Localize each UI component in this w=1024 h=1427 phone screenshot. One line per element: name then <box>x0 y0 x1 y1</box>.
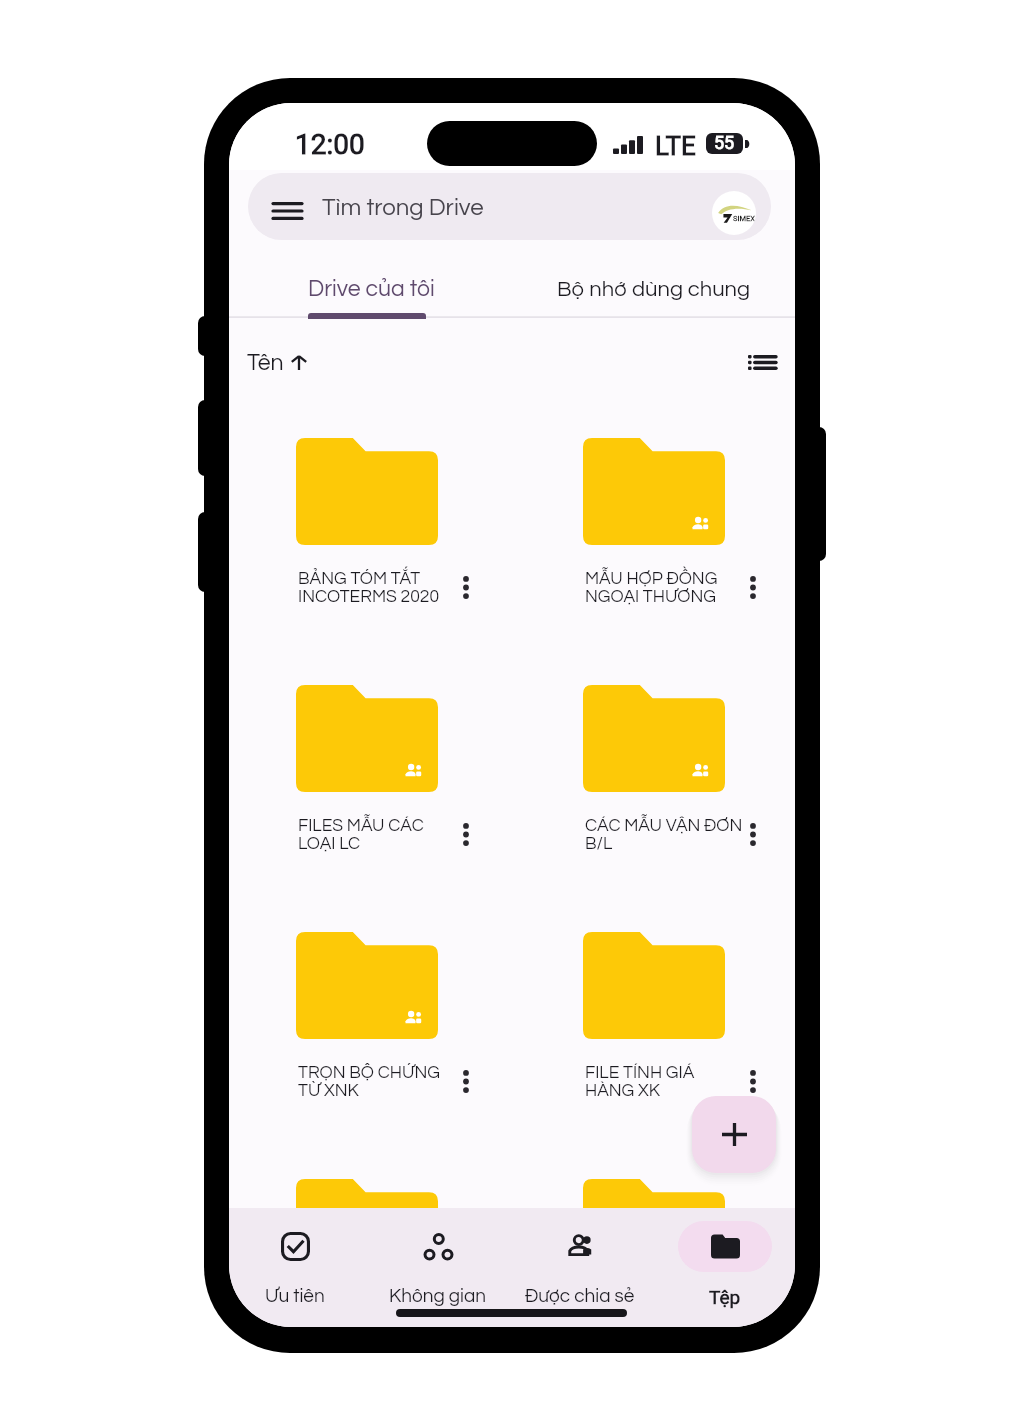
button[interactable]: FILE TÍNH GIÁ <box>550 915 760 1115</box>
staticText: Không gian <box>389 1286 487 1306</box>
button[interactable]: More options <box>453 1307 479 1327</box>
button[interactable]: Menu <box>248 173 771 240</box>
button[interactable]: Create new <box>692 1096 776 1173</box>
button[interactable]: MẪU HỢP ĐỒNG <box>550 421 760 621</box>
staticText: Tên <box>247 351 284 375</box>
staticText: SIMEX <box>733 214 756 223</box>
button[interactable]: More options <box>740 1307 766 1327</box>
button[interactable]: CÁC MẪU VẬN ĐƠN <box>550 668 760 868</box>
staticText: TỪ XNK <box>298 1082 359 1100</box>
button[interactable]: More options <box>740 813 766 855</box>
staticText: BẢNG TÓM TẮT <box>298 570 421 588</box>
staticText: Tìm trong Drive <box>322 195 484 220</box>
staticText: 12:00 <box>295 128 365 161</box>
staticText: NGOẠI THƯƠNG <box>585 588 716 606</box>
staticText: TRỌN BỘ CHỨNG <box>298 1064 440 1082</box>
button[interactable]: More options <box>550 1162 760 1327</box>
button[interactable]: Bộ nhớ dùng chung <box>529 262 779 322</box>
button[interactable] <box>239 341 351 385</box>
staticText: MẪU HỢP ĐỒNG <box>585 570 718 588</box>
button[interactable]: FILES MẪU CÁC <box>263 668 473 868</box>
staticText: Được chia sẻ <box>525 1286 635 1306</box>
staticText: LOẠI LC <box>298 835 361 853</box>
staticText: FILE TÍNH GIÁ <box>585 1064 695 1082</box>
button[interactable]: More options <box>453 1060 479 1102</box>
staticText: Ưu tiên <box>265 1286 325 1306</box>
button[interactable]: More options <box>453 566 479 608</box>
other: Menu <box>273 202 302 220</box>
staticText: CÁC MẪU VẬN ĐƠN <box>585 817 743 835</box>
button[interactable]: More options <box>263 1162 473 1327</box>
button[interactable]: BẢNG TÓM TẮT <box>263 421 473 621</box>
button[interactable]: Được chia sẻ <box>518 1213 642 1319</box>
button[interactable]: Switch to list view <box>731 337 781 387</box>
staticText: 55 <box>714 133 735 153</box>
staticText: Bộ nhớ dùng chung <box>557 278 751 301</box>
button[interactable]: More options <box>740 566 766 608</box>
button[interactable]: Tệp <box>663 1213 787 1319</box>
staticText: Tệp <box>709 1286 741 1308</box>
button[interactable]: More options <box>740 1060 766 1102</box>
staticText: HÀNG XK <box>585 1082 660 1100</box>
button[interactable]: Drive của tôi <box>259 262 484 322</box>
button[interactable]: Không gian <box>376 1213 500 1319</box>
staticText: LTE <box>655 131 696 161</box>
staticText: FILES MẪU CÁC <box>298 817 424 835</box>
staticText: Drive của tôi <box>308 277 435 301</box>
staticText: INCOTERMS 2020 <box>298 588 440 606</box>
button[interactable]: TRỌN BỘ CHỨNG <box>263 915 473 1115</box>
staticText: B/L <box>585 835 613 853</box>
button[interactable]: Ưu tiên <box>233 1213 357 1319</box>
button[interactable]: Account <box>712 191 756 235</box>
button[interactable]: More options <box>453 813 479 855</box>
